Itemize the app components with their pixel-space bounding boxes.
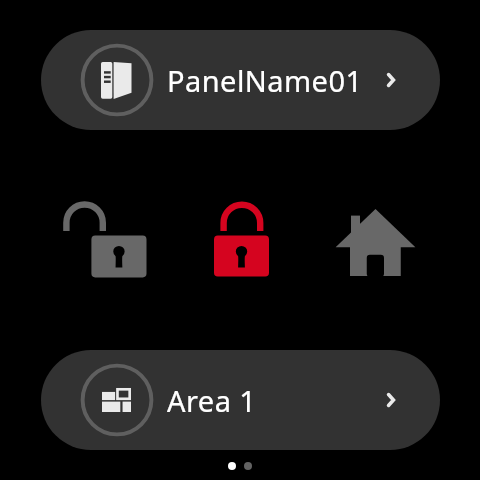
staticText: PanelName01	[167, 61, 363, 100]
button[interactable]: Area 1	[41, 350, 440, 450]
button[interactable]: Arm stay	[330, 192, 420, 286]
staticText: Area 1	[167, 381, 257, 420]
button[interactable]: Disarm	[55, 192, 151, 286]
button[interactable]: Arm away	[206, 192, 290, 286]
button[interactable]: PanelName01	[41, 30, 440, 130]
